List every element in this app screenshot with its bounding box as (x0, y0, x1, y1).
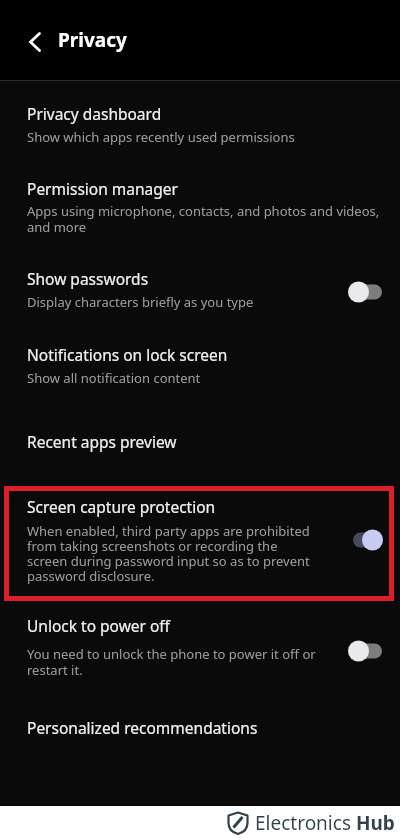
button[interactable]: Personalized recommendations (0, 710, 400, 752)
staticText: Apps using microphone, contacts, and pho… (27, 202, 400, 235)
button[interactable]: Permission manager (0, 170, 400, 245)
staticText: When enabled, third party apps are prohi… (27, 522, 400, 585)
staticText: Show all notification content (27, 369, 400, 387)
staticText: Privacy dashboard (27, 103, 162, 124)
button[interactable]: Privacy dashboard (0, 95, 400, 155)
button[interactable]: Show passwords (0, 260, 400, 322)
button[interactable] (26, 31, 48, 53)
staticText: Screen capture protection (27, 496, 216, 517)
staticText: Notifications on lock screen (27, 344, 228, 365)
staticText: Show which apps recently used permission… (27, 128, 400, 146)
button[interactable]: Recent apps preview (0, 420, 400, 465)
staticText: Display characters briefly as you type (27, 293, 400, 311)
staticText: Electronics Hub (255, 810, 395, 836)
button[interactable]: Notifications on lock screen (0, 336, 400, 396)
staticText: Recent apps preview (27, 431, 177, 452)
staticText: Permission manager (27, 178, 178, 199)
button[interactable]: Screen capture protection (0, 491, 400, 596)
button[interactable]: Unlock to power off (0, 608, 400, 688)
staticText: Unlock to power off (27, 615, 171, 636)
staticText: Show passwords (27, 268, 149, 289)
staticText: Privacy (58, 27, 127, 53)
staticText: You need to unlock the phone to power it… (27, 645, 400, 678)
staticText: Personalized recommendations (27, 717, 258, 738)
